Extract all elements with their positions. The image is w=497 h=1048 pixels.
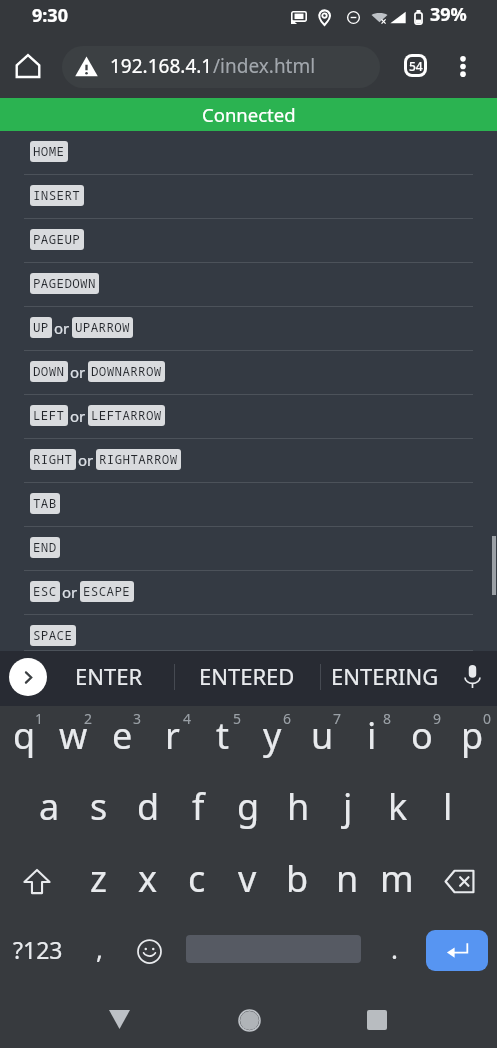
button[interactable]: . [373,916,416,986]
button[interactable]: f [172,776,222,846]
staticText: 3 [133,709,142,728]
staticText: t [216,711,229,760]
button[interactable]: Shift [0,846,74,916]
staticText: . [391,931,398,966]
staticText: PAGEUP [33,231,81,248]
button[interactable]: Emoji [125,916,173,986]
button[interactable]: l [422,776,472,846]
button[interactable]: TAB [0,483,497,527]
button[interactable]: q [0,706,49,776]
button[interactable]: INSERT [0,175,497,219]
staticText: b [286,854,309,903]
button[interactable]: i [347,706,397,776]
button[interactable]: g [222,776,272,846]
button[interactable]: r [147,706,197,776]
button[interactable]: Recent apps [353,996,401,1044]
button[interactable]: ENTER [52,651,165,706]
staticText: x [138,854,158,903]
staticText: r [165,711,180,760]
button[interactable]: 192.168.4.1 [62,46,380,88]
button[interactable]: d [122,776,172,846]
button[interactable]: UP [0,307,497,351]
button[interactable]: y [247,706,297,776]
button[interactable]: e [98,706,147,776]
button[interactable]: z [74,846,123,916]
staticText: w [59,711,88,760]
button[interactable]: ?123 [4,916,72,986]
button[interactable]: RIGHT [0,439,497,483]
staticText: 2 [84,709,93,728]
button[interactable]: b [272,846,322,916]
staticText: m [380,854,414,903]
staticText: 192.168.4.1 [110,53,213,79]
button[interactable]: x [123,846,172,916]
button[interactable]: Tabs, 54 open [395,45,435,85]
button[interactable]: Home [225,996,273,1044]
staticText: f [192,782,205,831]
button[interactable]: v [222,846,272,916]
staticText: LEFTARROW [91,407,162,424]
staticText: 9 [433,709,442,728]
staticText: ESCAPE [83,583,131,600]
button[interactable]: Enter [421,916,493,986]
button[interactable]: DOWN [0,351,497,395]
button[interactable]: u [297,706,347,776]
staticText: or [78,450,94,470]
staticText: 54 [409,58,423,74]
button[interactable]: Space [174,916,373,986]
staticText: ?123 [13,934,63,965]
staticText: or [62,582,78,602]
button[interactable]: ENTERED [184,651,310,706]
button[interactable]: More options [445,48,481,84]
button[interactable]: PAGEDOWN [0,263,497,307]
staticText: or [70,406,86,426]
staticText: 1 [35,709,44,728]
staticText: y [263,711,282,760]
staticText: l [443,782,453,831]
button[interactable]: SPACE [0,615,497,651]
staticText: e [112,711,133,760]
staticText: RIGHT [33,451,73,468]
button[interactable]: k [372,776,422,846]
staticText: 4 [183,709,192,728]
button[interactable]: j [322,776,372,846]
button[interactable]: END [0,527,497,571]
button[interactable]: c [172,846,222,916]
staticText: Connected [202,102,296,127]
staticText: 0 [483,709,492,728]
button[interactable]: o [397,706,447,776]
staticText: j [343,782,353,831]
button[interactable]: m [372,846,422,916]
button[interactable]: s [73,776,122,846]
staticText: 5 [233,709,242,728]
staticText: PAGEDOWN [33,275,96,292]
staticText: c [188,854,206,903]
staticText: ENTERED [199,661,295,691]
button[interactable]: LEFT [0,395,497,439]
button[interactable]: Backspace [422,846,497,916]
button[interactable]: n [322,846,372,916]
button[interactable]: t [197,706,247,776]
staticText: s [90,782,108,831]
button[interactable]: , [76,916,123,986]
button[interactable]: PAGEUP [0,219,497,263]
button[interactable]: Back [95,995,143,1043]
button[interactable]: HOME [0,131,497,175]
staticText: /index.html [213,53,316,79]
staticText: p [461,711,484,760]
button[interactable]: p [447,706,497,776]
button[interactable]: h [272,776,322,846]
button[interactable]: Voice input [454,658,491,695]
button[interactable]: ENTERING [324,651,445,706]
staticText: ENTER [75,661,143,691]
button[interactable]: w [49,706,98,776]
button[interactable]: Expand suggestions [9,658,47,696]
staticText: q [13,711,36,760]
staticText: 7 [333,709,342,728]
staticText: v [238,854,257,903]
staticText: HOME [33,143,65,160]
staticText: TAB [33,495,57,512]
button[interactable]: Home [9,47,47,85]
button[interactable]: ESC [0,571,497,615]
button[interactable]: a [24,776,73,846]
